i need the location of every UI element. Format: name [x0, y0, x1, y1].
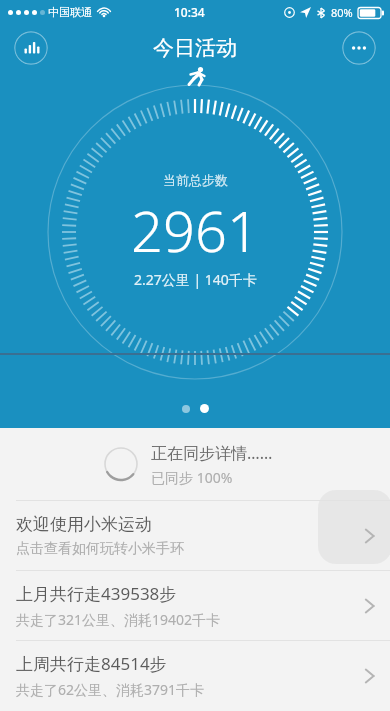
staticText: 80% — [331, 5, 353, 20]
staticText: 正在同步详情…… — [151, 442, 273, 464]
button[interactable]: More options — [342, 31, 376, 65]
button[interactable]: 欢迎使用小米运动 — [0, 501, 390, 570]
staticText: 共走了62公里、消耗3791千卡 — [16, 680, 205, 699]
staticText: 10:34 — [174, 4, 205, 20]
button[interactable]: Statistics — [14, 31, 48, 65]
staticText: 共走了321公里、消耗19402千卡 — [16, 610, 221, 629]
staticText: 2961 — [131, 192, 259, 268]
staticText: 欢迎使用小米运动 — [16, 514, 152, 535]
staticText: 当前总步数 — [163, 172, 228, 188]
staticText: 2.27公里 | 140千卡 — [134, 270, 257, 289]
staticText: 上周共行走84514步 — [16, 652, 167, 675]
staticText: 点击查看如何玩转小米手环 — [16, 540, 184, 558]
staticText: 上月共行走439538步 — [16, 582, 177, 605]
button[interactable]: 上周共行走84514步 — [0, 641, 390, 710]
button[interactable]: 正在同步详情…… — [0, 428, 390, 500]
staticText: 已同步 100% — [151, 468, 233, 487]
button[interactable]: 上月共行走439538步 — [0, 571, 390, 640]
staticText: 今日活动 — [153, 35, 237, 61]
staticText: 中国联通 — [48, 5, 92, 19]
